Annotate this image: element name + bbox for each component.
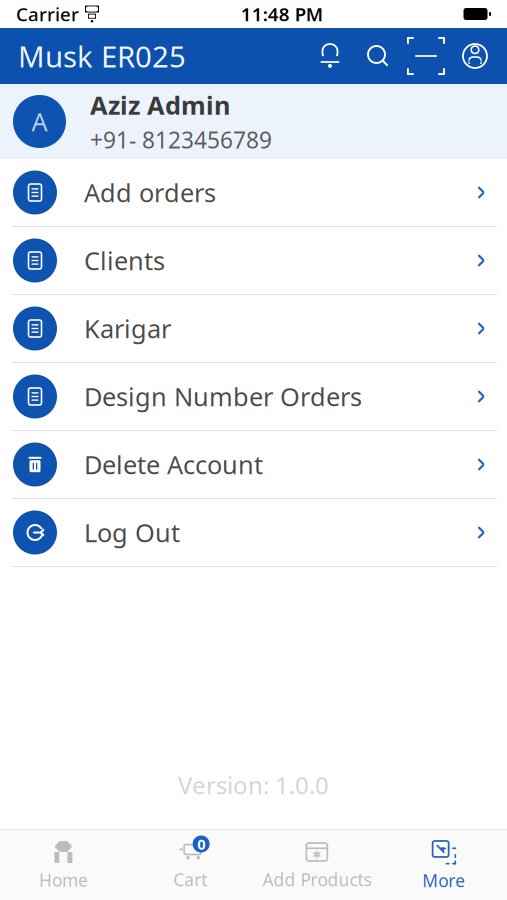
button[interactable]: Design Number Orders (0, 363, 507, 431)
button[interactable]: Profile (461, 42, 489, 70)
staticText: Delete Account (84, 448, 263, 481)
staticText: Clients (84, 244, 165, 277)
staticText: 0 (197, 834, 205, 854)
button[interactable]: Log Out (0, 499, 507, 567)
staticText: Home (39, 868, 88, 891)
staticText: Cart (173, 868, 207, 891)
staticText: More (422, 869, 465, 892)
staticText: Carrier (16, 2, 79, 26)
staticText: Design Number Orders (84, 380, 362, 413)
button[interactable]: More (380, 830, 507, 900)
button[interactable]: Delete Account (0, 431, 507, 499)
button[interactable]: Clients (0, 227, 507, 295)
staticText: A (31, 105, 47, 138)
button[interactable]: Notifications (317, 43, 343, 69)
staticText: Version: 1.0.0 (178, 769, 329, 801)
staticText: Log Out (84, 516, 180, 549)
button[interactable]: Search (365, 43, 391, 69)
button[interactable]: Add Products (253, 831, 380, 899)
button[interactable]: Scan barcode (413, 43, 439, 69)
button[interactable]: 0 (127, 831, 254, 899)
staticText: Aziz Admin (90, 88, 230, 122)
button[interactable]: Home (0, 830, 127, 899)
staticText: 11:48 PM (241, 2, 323, 26)
staticText: +91- 8123456789 (90, 125, 272, 155)
staticText: Add Products (262, 868, 371, 891)
staticText: Musk ER025 (18, 36, 186, 75)
staticText: Add orders (84, 176, 216, 209)
button[interactable]: Karigar (0, 295, 507, 363)
button[interactable]: Add orders (0, 159, 507, 227)
staticText: Karigar (84, 312, 171, 345)
